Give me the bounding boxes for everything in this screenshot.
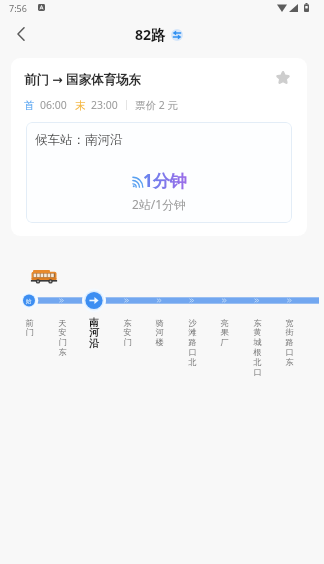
staticText: 末 xyxy=(75,99,86,112)
staticText: 始 xyxy=(26,298,32,305)
button[interactable]: 南 河 沿 xyxy=(78,316,110,350)
staticText: 南 河 沿 xyxy=(89,316,99,350)
staticText: 06:00 xyxy=(40,98,67,112)
staticText: 亮 果 厂 xyxy=(220,318,229,348)
staticText: 前 门 xyxy=(25,318,34,338)
button[interactable]: 宽 街 路 口 东 xyxy=(273,318,305,368)
staticText: 骑 河 楼 xyxy=(155,318,164,348)
button[interactable]: Favorite xyxy=(270,65,296,91)
button[interactable]: 骑 河 楼 xyxy=(143,318,175,348)
button[interactable]: 前 门 xyxy=(13,318,45,338)
staticText: 票价 2 元 xyxy=(135,98,178,112)
staticText: 东 黄 城 根 北 口 xyxy=(253,318,262,378)
button[interactable]: 东 黄 城 根 北 口 xyxy=(241,318,273,378)
staticText: 首 xyxy=(24,99,35,112)
staticText: 前门 → 国家体育场东 xyxy=(24,71,141,88)
staticText: 候车站：南河沿 xyxy=(35,132,123,148)
button[interactable]: Back xyxy=(8,21,34,47)
staticText: 82路 xyxy=(135,25,166,44)
button[interactable]: 天 安 门 东 xyxy=(46,318,78,358)
staticText: 7:56 xyxy=(9,2,27,14)
button[interactable]: 亮 果 厂 xyxy=(208,318,240,348)
staticText: 1分钟 xyxy=(143,169,187,192)
staticText: 宽 街 路 口 东 xyxy=(285,318,294,368)
staticText: 天 安 门 东 xyxy=(58,318,67,358)
staticText: 沙 滩 路 口 北 xyxy=(188,318,197,368)
staticText: 2站/1分钟 xyxy=(26,196,292,212)
button[interactable]: 东 安 门 xyxy=(111,318,143,348)
staticText: 东 安 门 xyxy=(123,318,132,348)
button[interactable]: 沙 滩 路 口 北 xyxy=(176,318,208,368)
button[interactable]: Swap direction xyxy=(171,29,183,41)
staticText: 23:00 xyxy=(91,98,118,112)
